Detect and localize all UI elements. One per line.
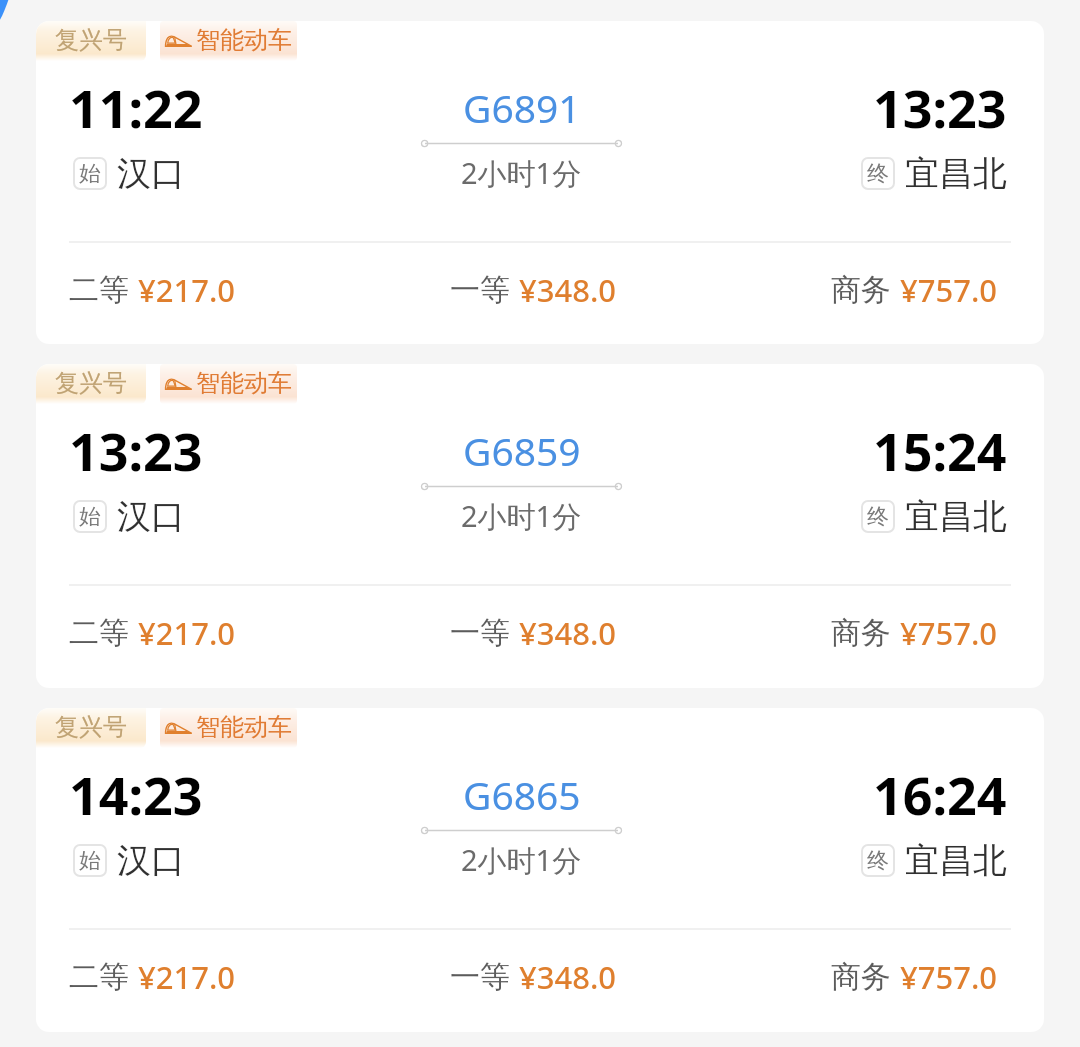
staticText: ¥217.0 [138,956,236,998]
staticText: 商务 [831,614,891,652]
staticText: ¥348.0 [519,612,617,654]
button[interactable]: 智能动车 [160,364,297,404]
staticText: 一等 [450,271,510,309]
button[interactable]: 二等 [69,269,236,311]
button[interactable]: 智能动车 [160,708,297,748]
button[interactable]: 复兴号 [36,364,1044,688]
button[interactable]: 一等 [450,269,617,311]
staticText: ¥757.0 [900,269,998,311]
staticText: 始 [79,160,101,188]
staticText: ¥348.0 [519,269,617,311]
staticText: 二等 [69,958,129,996]
button[interactable]: 一等 [450,612,617,654]
staticText: 14:23 [69,759,203,830]
staticText: ¥757.0 [900,612,998,654]
staticText: 2小时1分 [461,496,582,536]
staticText: 宜昌北 [905,152,1007,195]
staticText: 汉口 [117,495,185,538]
button[interactable]: 复兴号 [36,21,146,61]
staticText: ¥217.0 [138,269,236,311]
other: 智能动车 [165,34,192,47]
staticText: 15:24 [873,415,1007,486]
button[interactable]: 复兴号 [36,708,1044,1032]
staticText: ¥348.0 [519,956,617,998]
button[interactable]: 商务 [831,269,998,311]
staticText: 汉口 [117,839,185,882]
staticText: 13:23 [873,72,1007,143]
button[interactable]: 复兴号 [36,364,146,404]
staticText: 宜昌北 [905,839,1007,882]
staticText: 复兴号 [55,712,127,742]
button[interactable]: 二等 [69,612,236,654]
staticText: 二等 [69,271,129,309]
staticText: 始 [79,847,101,875]
staticText: G6891 [463,81,581,134]
button[interactable]: 一等 [450,956,617,998]
staticText: 一等 [450,614,510,652]
staticText: 复兴号 [55,25,127,55]
staticText: 2小时1分 [461,153,582,193]
staticText: 16:24 [873,759,1007,830]
staticText: 终 [867,847,889,875]
staticText: 智能动车 [196,368,292,398]
staticText: 复兴号 [55,368,127,398]
staticText: 商务 [831,271,891,309]
staticText: G6865 [463,768,581,821]
staticText: 终 [867,160,889,188]
staticText: 宜昌北 [905,495,1007,538]
staticText: 一等 [450,958,510,996]
staticText: ¥757.0 [900,956,998,998]
staticText: ¥217.0 [138,612,236,654]
button[interactable]: 复兴号 [36,708,146,748]
staticText: 二等 [69,614,129,652]
staticText: G6859 [463,424,581,477]
staticText: 商务 [831,958,891,996]
other: 智能动车 [165,377,192,390]
staticText: 11:22 [69,72,203,143]
staticText: 终 [867,503,889,531]
button[interactable]: 二等 [69,956,236,998]
staticText: 智能动车 [196,712,292,742]
button[interactable]: 商务 [831,612,998,654]
button[interactable]: 智能动车 [160,21,297,61]
staticText: 2小时1分 [461,840,582,880]
button[interactable]: 商务 [831,956,998,998]
staticText: 智能动车 [196,25,292,55]
staticText: 汉口 [117,152,185,195]
button[interactable]: 复兴号 [36,21,1044,344]
staticText: 13:23 [69,415,203,486]
other: 智能动车 [165,721,192,734]
staticText: 始 [79,503,101,531]
